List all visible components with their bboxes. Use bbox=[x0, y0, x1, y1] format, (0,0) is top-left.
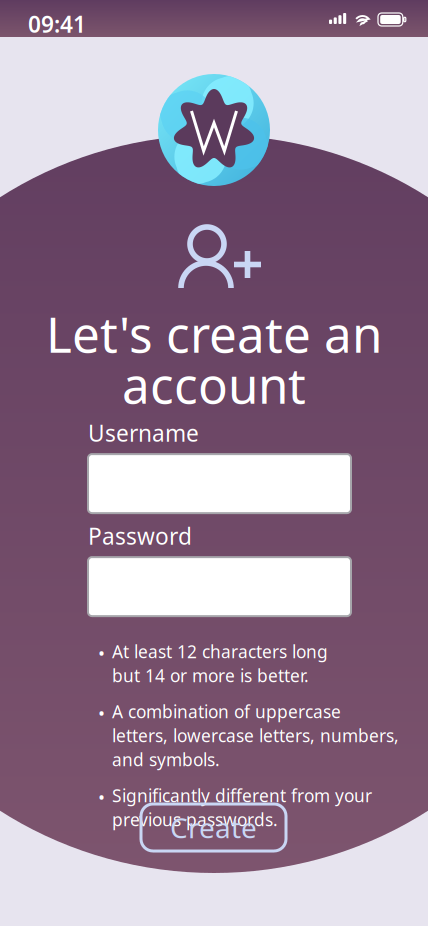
button[interactable] bbox=[88, 454, 351, 513]
staticText: and symbols. bbox=[112, 748, 220, 771]
staticText: • bbox=[98, 640, 105, 665]
staticText: A combination of uppercase bbox=[112, 700, 341, 723]
button[interactable] bbox=[88, 557, 351, 616]
staticText: Create bbox=[170, 809, 257, 846]
button[interactable]: Create bbox=[141, 804, 286, 851]
staticText: previous passwords. bbox=[112, 808, 278, 831]
staticText: • bbox=[98, 700, 105, 725]
staticText: Password bbox=[88, 521, 192, 551]
staticText: • bbox=[98, 784, 105, 809]
staticText: 09:41 bbox=[28, 9, 86, 39]
staticText: Let's create an bbox=[46, 301, 382, 366]
staticText: letters, lowercase letters, numbers, bbox=[112, 724, 399, 747]
staticText: Significantly different from your bbox=[112, 784, 372, 807]
staticText: At least 12 characters long bbox=[112, 640, 328, 663]
staticText: but 14 or more is better. bbox=[112, 664, 309, 687]
staticText: account bbox=[122, 352, 306, 417]
staticText: Username bbox=[88, 418, 199, 448]
